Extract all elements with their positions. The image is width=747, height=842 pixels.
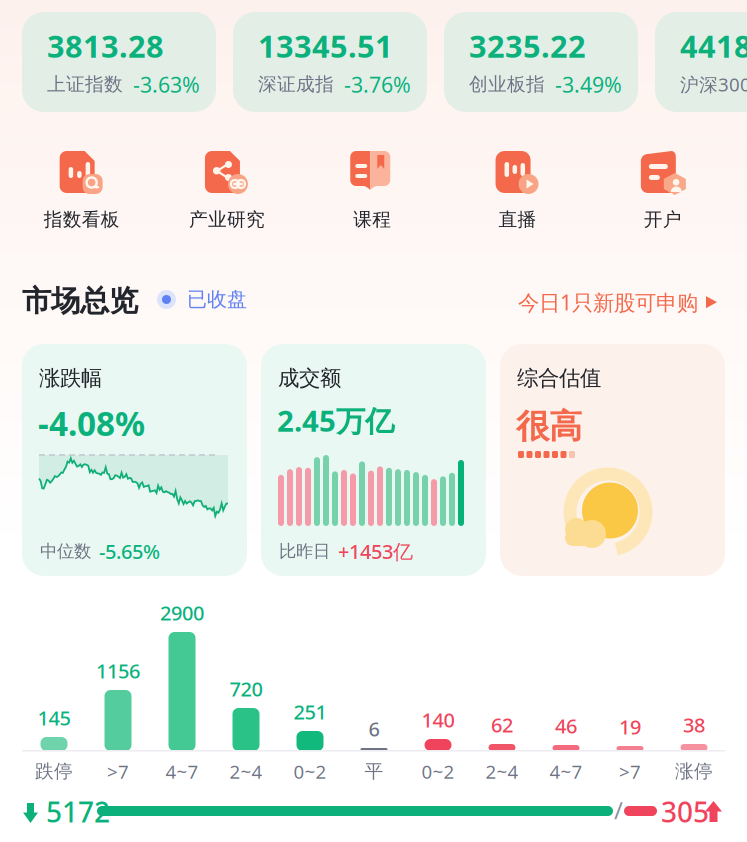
button[interactable]: 4418.30: [655, 12, 747, 112]
button[interactable]: 13345.51: [233, 12, 427, 112]
staticText: 2.45万亿: [277, 401, 394, 440]
button[interactable]: 直播: [445, 151, 590, 231]
staticText: 720: [229, 675, 262, 702]
staticText: 很高: [516, 406, 582, 447]
staticText: 深证成指: [258, 73, 334, 96]
button[interactable]: 产业研究: [154, 151, 300, 231]
staticText: 5172: [46, 793, 110, 830]
staticText: 平: [364, 760, 383, 783]
staticText: >7: [107, 759, 129, 784]
staticText: 3813.28: [47, 25, 164, 66]
staticText: 0~2: [421, 759, 454, 784]
staticText: 2~4: [229, 759, 262, 784]
staticText: -5.65%: [99, 538, 160, 565]
staticText: 4418.30: [680, 25, 747, 66]
staticText: 140: [421, 706, 454, 733]
staticText: 沪深300: [680, 72, 747, 97]
staticText: 2900: [160, 599, 204, 626]
staticText: 涨跌幅: [39, 365, 102, 391]
button[interactable]: 今日1只新股可申购: [518, 288, 717, 316]
staticText: 综合估值: [517, 365, 601, 391]
button[interactable]: 指数看板: [9, 151, 154, 231]
button[interactable]: 3235.22: [444, 12, 638, 112]
staticText: -3.76%: [344, 70, 411, 98]
staticText: 6: [368, 715, 379, 742]
staticText: 62: [491, 711, 513, 738]
staticText: -4.08%: [38, 401, 145, 445]
staticText: -3.49%: [555, 70, 622, 98]
staticText: 4~7: [165, 759, 198, 784]
staticText: 市场总览: [22, 283, 138, 319]
staticText: 145: [37, 704, 70, 731]
staticText: 1156: [96, 657, 140, 684]
staticText: 创业板指: [469, 73, 545, 96]
staticText: 3235.22: [469, 25, 586, 66]
staticText: 0~2: [293, 759, 326, 784]
staticText: -3.63%: [133, 70, 200, 98]
staticText: 46: [555, 712, 577, 739]
staticText: 4~7: [549, 759, 582, 784]
button[interactable]: 开户: [590, 151, 735, 231]
staticText: 今日1只新股可申购: [518, 288, 698, 316]
staticText: 开户: [644, 208, 682, 231]
staticText: 13345.51: [258, 25, 393, 66]
button[interactable]: 课程: [300, 151, 445, 231]
staticText: 指数看板: [44, 208, 120, 231]
staticText: 涨停: [675, 760, 713, 783]
staticText: 38: [683, 711, 705, 738]
staticText: 305: [661, 793, 709, 830]
staticText: 上证指数: [47, 73, 123, 96]
button[interactable]: 3813.28: [22, 12, 216, 112]
staticText: 已收盘: [187, 287, 247, 312]
staticText: 成交额: [278, 365, 341, 391]
staticText: 比昨日: [279, 541, 330, 562]
staticText: /: [614, 794, 623, 826]
staticText: 直播: [499, 208, 537, 231]
staticText: >7: [619, 759, 641, 784]
staticText: 课程: [353, 208, 391, 231]
staticText: 2~4: [485, 759, 518, 784]
staticText: 产业研究: [189, 208, 265, 231]
staticText: +1453亿: [338, 538, 413, 565]
staticText: 跌停: [35, 760, 73, 783]
staticText: 19: [619, 713, 641, 740]
staticText: 251: [293, 698, 326, 725]
staticText: 中位数: [40, 541, 91, 562]
